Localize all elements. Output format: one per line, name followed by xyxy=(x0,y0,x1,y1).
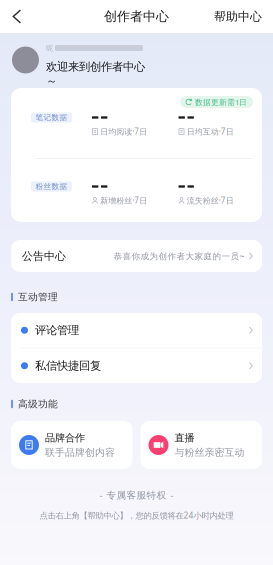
staticText: 日均阅读·7日 xyxy=(100,126,147,137)
staticText: 高级功能 xyxy=(18,398,58,410)
button[interactable]: 私信快捷回复 xyxy=(11,348,262,383)
staticText: 欢迎来到创作者中心～ xyxy=(46,59,145,88)
staticText: 点击右上角【帮助中心】，您的反馈将在24小时内处理 xyxy=(39,510,233,521)
staticText: 评论管理 xyxy=(35,323,79,337)
staticText: 笔记数据 xyxy=(35,113,67,122)
staticText: 新增粉丝·7日 xyxy=(100,195,147,206)
button[interactable]: 返回 xyxy=(0,0,34,33)
staticText: 日均互动·7日 xyxy=(187,126,234,137)
staticText: 数据更新需1日 xyxy=(195,97,247,107)
staticText: 流失粉丝·7日 xyxy=(187,195,234,206)
staticText: 创作者中心 xyxy=(104,8,169,25)
staticText: 私信快捷回复 xyxy=(35,359,101,373)
staticText: 品牌合作 xyxy=(45,431,85,444)
staticText: 恭喜你成为创作者大家庭的一员~ xyxy=(113,250,244,262)
button[interactable]: 公告中心 xyxy=(11,240,262,272)
staticText: 帮助中心 xyxy=(214,9,262,24)
staticText: 昵 xyxy=(46,43,53,53)
staticText: - 专属客服特权 - xyxy=(99,488,173,502)
button[interactable]: 直播 xyxy=(140,421,262,469)
button[interactable]: 评论管理 xyxy=(11,313,262,347)
staticText: 联手品牌创内容 xyxy=(45,446,115,459)
staticText: 互动管理 xyxy=(18,291,58,303)
button[interactable]: 品牌合作 xyxy=(11,421,132,469)
staticText: 与粉丝亲密互动 xyxy=(174,446,244,459)
staticText: 公告中心 xyxy=(22,249,66,263)
staticText: 直播 xyxy=(174,431,194,444)
staticText: 粉丝数据 xyxy=(35,182,67,191)
button[interactable]: 帮助中心 xyxy=(203,0,273,33)
